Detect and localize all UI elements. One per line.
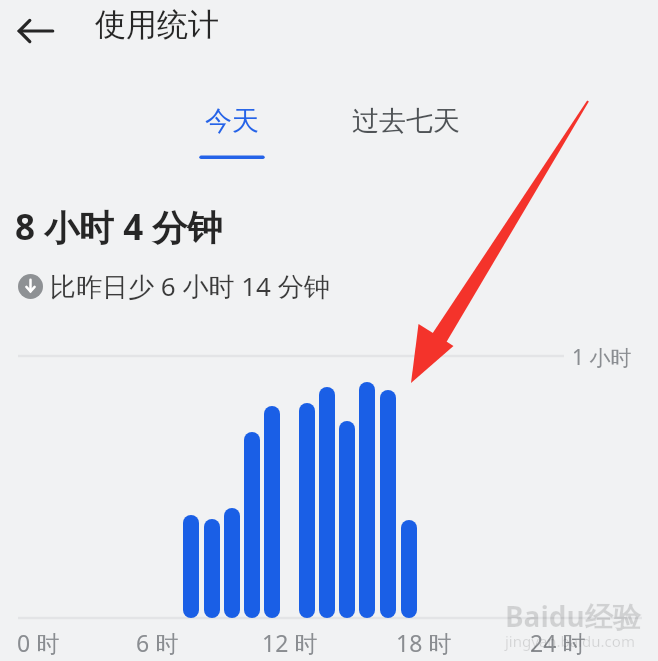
staticText: 过去七天: [352, 104, 460, 138]
staticText: 24 时: [530, 627, 586, 658]
staticText: 8 小时 4 分钟: [15, 203, 223, 251]
staticText: 比昨日少 6 小时 14 分钟: [50, 268, 330, 304]
staticText: 18 时: [396, 627, 452, 658]
button[interactable]: Back: [5, 0, 67, 62]
staticText: jingyan.baidu.com: [505, 631, 635, 651]
staticText: Baidu经验: [505, 597, 641, 635]
staticText: 今天: [205, 104, 259, 138]
button[interactable]: 过去七天: [328, 104, 483, 154]
staticText: 6 时: [136, 627, 179, 658]
button[interactable]: 今天: [182, 104, 282, 166]
staticText: 0 时: [17, 627, 60, 658]
staticText: 1 小时: [572, 343, 632, 372]
staticText: 使用统计: [95, 5, 219, 44]
staticText: 12 时: [262, 627, 318, 658]
